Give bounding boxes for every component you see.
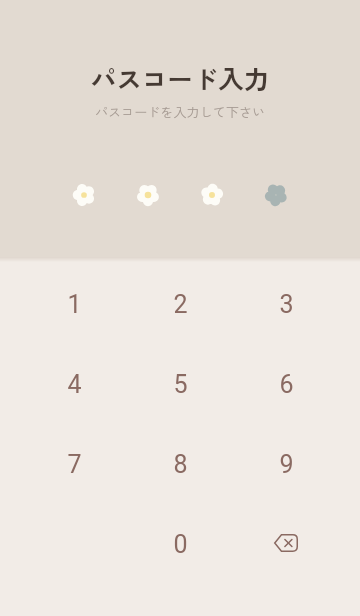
button[interactable]: 1 bbox=[34, 264, 114, 344]
staticText: 8 bbox=[173, 450, 188, 479]
staticText: 4 bbox=[67, 370, 82, 399]
staticText: 9 bbox=[279, 450, 294, 479]
staticText: 2 bbox=[173, 290, 188, 319]
staticText: 0 bbox=[173, 530, 188, 559]
staticText: 1 bbox=[67, 290, 82, 319]
button[interactable]: 6 bbox=[246, 344, 326, 424]
staticText: パスコードを入力して下さい bbox=[0, 102, 360, 121]
button[interactable]: Backspace bbox=[246, 504, 326, 584]
button[interactable]: 9 bbox=[246, 424, 326, 504]
button[interactable]: 0 bbox=[140, 504, 220, 584]
button[interactable]: 4 bbox=[34, 344, 114, 424]
staticText: 3 bbox=[279, 290, 294, 319]
button[interactable]: 8 bbox=[140, 424, 220, 504]
staticText: パスコード入力 bbox=[0, 59, 360, 96]
button[interactable]: 5 bbox=[140, 344, 220, 424]
button[interactable]: 3 bbox=[246, 264, 326, 344]
button[interactable]: 7 bbox=[34, 424, 114, 504]
staticText: 5 bbox=[173, 370, 188, 399]
staticText: 7 bbox=[67, 450, 82, 479]
button[interactable]: 2 bbox=[140, 264, 220, 344]
staticText: 6 bbox=[279, 370, 294, 399]
